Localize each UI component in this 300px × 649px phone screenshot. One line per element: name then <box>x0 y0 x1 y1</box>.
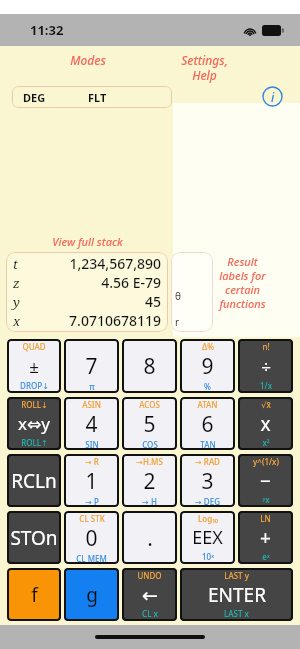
staticText: Modes <box>70 52 106 68</box>
staticText: → R <box>85 456 99 467</box>
button[interactable]: ROLL↓ <box>7 397 61 450</box>
staticText: ÷ <box>261 355 271 378</box>
button[interactable]: LAST y <box>180 568 293 621</box>
staticText: DEG <box>23 90 46 105</box>
staticText: ACOS <box>139 399 160 410</box>
staticText: 0 <box>85 524 98 553</box>
button[interactable]: DEG <box>12 86 172 108</box>
staticText: Δ% <box>202 341 214 352</box>
staticText: RCLn <box>11 468 57 494</box>
button[interactable]: t <box>6 252 168 332</box>
staticText: 8 <box>143 352 156 381</box>
staticText: x <box>13 312 21 330</box>
staticText: UNDO <box>137 570 162 581</box>
staticText: 2 <box>143 467 156 496</box>
staticText: CL MEM <box>76 553 107 562</box>
staticText: ASIN <box>82 399 101 410</box>
button[interactable]: f <box>7 568 61 621</box>
staticText: → DEG <box>195 496 220 505</box>
staticText: % <box>204 381 211 391</box>
button[interactable]: 7 <box>64 339 119 393</box>
staticText: r <box>175 315 180 329</box>
button[interactable]: ATAN <box>180 397 235 450</box>
staticText: t <box>13 255 18 273</box>
staticText: x <box>260 411 271 437</box>
button[interactable]: Log₁₀ <box>180 511 235 564</box>
button[interactable]: UNDO <box>122 568 177 621</box>
staticText: + <box>260 525 271 551</box>
button[interactable]: RCLn <box>7 454 61 507</box>
staticText: i <box>271 89 275 105</box>
staticText: 9 <box>201 352 214 381</box>
staticText: eˣ <box>262 551 270 562</box>
button[interactable]: ACOS <box>122 397 177 450</box>
staticText: LAST y <box>224 570 249 581</box>
button[interactable]: √x̄ <box>238 397 293 450</box>
button[interactable]: . <box>122 511 177 564</box>
staticText: g <box>86 582 98 608</box>
button[interactable]: CL STK <box>64 511 119 564</box>
staticText: 11:32 <box>30 21 64 39</box>
staticText: 1 <box>85 467 98 496</box>
staticText: ROLL↓ <box>21 399 48 410</box>
button[interactable]: y^(1/x) <box>238 454 293 507</box>
staticText: LAST x <box>224 608 249 619</box>
staticText: COS <box>142 439 158 448</box>
staticText: 7.0710678119 <box>21 311 161 330</box>
staticText: 7 <box>85 352 98 381</box>
staticText: LN <box>260 513 271 524</box>
staticText: ATAN <box>197 399 218 410</box>
button[interactable]: Δ% <box>180 339 235 393</box>
staticText: ENTER <box>208 582 266 608</box>
staticText: 10ˣ <box>202 551 214 562</box>
button[interactable]: Settings, Help <box>262 86 283 107</box>
staticText: ROLL↑ <box>21 437 48 448</box>
staticText: 1,234,567,890 <box>18 254 161 273</box>
staticText: π <box>89 381 95 391</box>
staticText: → RAD <box>195 456 220 467</box>
staticText: 5 <box>143 410 156 439</box>
staticText: ʸx <box>262 494 270 505</box>
staticText: 3 <box>201 467 214 496</box>
staticText: TAN <box>200 439 216 448</box>
staticText: y^(1/x) <box>253 456 279 467</box>
staticText: ± <box>29 355 39 378</box>
staticText: 45 <box>20 292 161 311</box>
staticText: Log₁₀ <box>198 513 218 524</box>
staticText: − <box>260 468 271 494</box>
button[interactable]: n! <box>238 339 293 393</box>
staticText: f <box>31 582 38 608</box>
staticText: QUAD <box>22 341 46 352</box>
button[interactable]: → R <box>64 454 119 507</box>
staticText: x² <box>262 437 270 448</box>
button[interactable]: 8 <box>122 339 177 393</box>
staticText: STOn <box>10 525 58 551</box>
staticText: Result labels for certain functions <box>219 254 266 311</box>
staticText: 1/x <box>260 380 272 391</box>
staticText: SIN <box>85 439 99 448</box>
staticText: Settings, Help <box>181 52 228 83</box>
button[interactable]: ASIN <box>64 397 119 450</box>
staticText: EEX <box>192 525 223 550</box>
staticText: → P <box>85 496 99 505</box>
staticText: CL x <box>142 608 158 619</box>
staticText: →H.MS <box>136 456 163 467</box>
button[interactable]: LN <box>238 511 293 564</box>
staticText: DROP↓ <box>20 380 49 391</box>
button[interactable]: STOn <box>7 511 61 564</box>
staticText: θ <box>175 289 181 303</box>
staticText: → H <box>142 496 157 505</box>
staticText: CL STK <box>79 513 105 524</box>
staticText: x⇔y <box>18 412 50 435</box>
button[interactable]: → RAD <box>180 454 235 507</box>
staticText: y <box>13 293 20 311</box>
staticText: √x̄ <box>261 399 271 410</box>
button[interactable]: QUAD <box>7 339 61 393</box>
staticText: . <box>147 524 153 553</box>
button[interactable]: →H.MS <box>122 454 177 507</box>
button[interactable]: g <box>64 568 119 621</box>
staticText: 4.56 E-79 <box>20 273 161 292</box>
staticText: 4 <box>85 410 98 439</box>
staticText: 6 <box>201 410 214 439</box>
staticText: FLT <box>88 90 107 105</box>
